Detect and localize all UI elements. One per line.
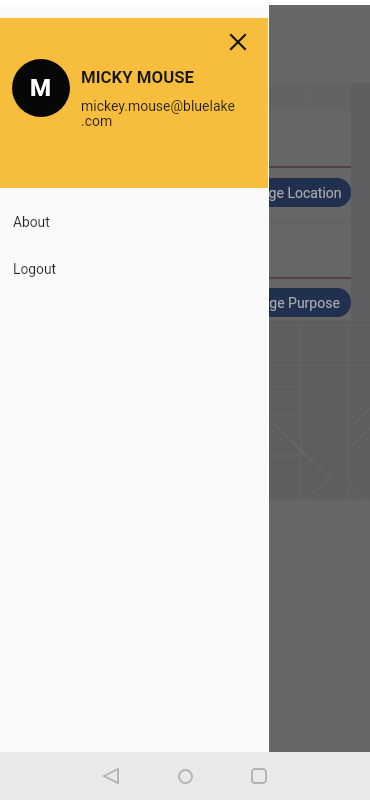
staticText: Change Purpose — [237, 295, 340, 311]
staticText: Logout — [13, 261, 57, 277]
button[interactable]: About — [0, 210, 269, 234]
button[interactable]: Change Location — [226, 178, 351, 207]
button[interactable]: Home — [163, 754, 207, 798]
staticText: M — [30, 74, 52, 102]
button[interactable]: Close navigation drawer — [0, 5, 370, 752]
staticText: About — [13, 214, 50, 230]
button[interactable]: Back — [89, 754, 133, 798]
staticText: MICKY MOUSE — [81, 67, 195, 87]
button[interactable]: Change Purpose — [226, 288, 351, 317]
staticText: Change Location — [236, 185, 342, 201]
staticText: mickey.mouse@bluelake.com — [81, 98, 237, 130]
button[interactable]: Logout — [0, 257, 269, 281]
button[interactable]: Close — [222, 26, 254, 58]
button[interactable]: Recents — [237, 754, 281, 798]
